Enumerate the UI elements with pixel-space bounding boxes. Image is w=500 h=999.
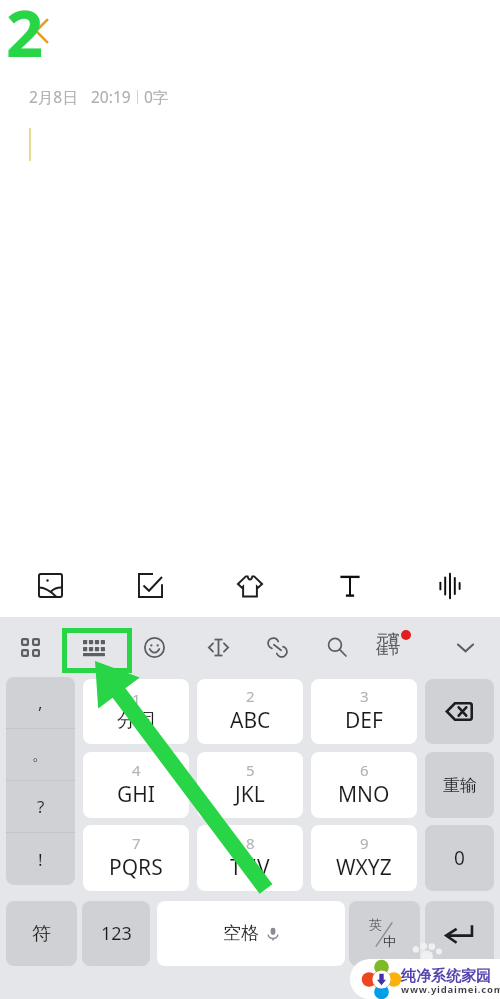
staticText: ?: [37, 795, 45, 818]
button[interactable]: Voice input: [400, 556, 500, 617]
button[interactable]: 空格: [157, 901, 345, 966]
staticText: 英: [369, 916, 382, 932]
button[interactable]: Apps: [10, 626, 50, 668]
button[interactable]: Back: [24, 12, 64, 52]
button[interactable]: 3: [311, 679, 417, 744]
staticText: 3: [360, 686, 369, 706]
staticText: 分词: [117, 709, 155, 733]
staticText: 5: [246, 760, 255, 780]
button[interactable]: Insert image: [0, 556, 100, 617]
staticText: 重输: [443, 775, 477, 796]
button[interactable]: 。: [6, 729, 75, 780]
staticText: 纯净系统家园: [401, 967, 491, 986]
button[interactable]: 重输: [425, 752, 494, 818]
staticText: ABC: [230, 706, 271, 735]
staticText: 0: [454, 845, 465, 871]
button[interactable]: 0: [425, 825, 494, 891]
button[interactable]: 5: [197, 752, 303, 818]
button[interactable]: Emoji: [136, 626, 173, 668]
staticText: ,: [38, 691, 43, 714]
button[interactable]: 9: [311, 825, 417, 891]
staticText: 4: [132, 760, 141, 780]
other: Backspace: [446, 702, 473, 721]
staticText: DEF: [345, 706, 383, 735]
staticText: 元宵: [376, 631, 400, 646]
staticText: 6: [360, 760, 369, 780]
button[interactable]: Collapse keyboard: [447, 626, 484, 668]
button[interactable]: ,: [6, 677, 75, 728]
staticText: MNO: [338, 780, 390, 809]
button[interactable]: Text format: [300, 556, 400, 617]
staticText: 8: [246, 833, 255, 853]
staticText: 20:19: [91, 86, 131, 107]
staticText: TUV: [230, 853, 270, 882]
staticText: JKL: [235, 780, 265, 809]
button[interactable]: 123: [82, 901, 150, 966]
staticText: 2月8日: [29, 86, 78, 107]
button[interactable]: ?: [6, 781, 75, 832]
staticText: 。: [32, 744, 49, 765]
staticText: 符: [32, 922, 51, 946]
staticText: WXYZ: [336, 853, 392, 882]
button[interactable]: 8: [197, 825, 303, 891]
button[interactable]: Move cursor: [200, 626, 237, 668]
staticText: 123: [101, 921, 132, 946]
staticText: 中: [383, 933, 396, 949]
button[interactable]: !: [6, 833, 75, 885]
staticText: 2: [246, 686, 255, 706]
staticText: 7: [132, 833, 141, 853]
staticText: PQRS: [109, 853, 163, 882]
button[interactable]: 1: [83, 679, 189, 744]
button[interactable]: 符: [6, 901, 77, 966]
button[interactable]: Clipboard: [259, 626, 296, 668]
staticText: 2: [6, 0, 44, 77]
button[interactable]: Style: [200, 556, 300, 617]
button[interactable]: 7: [83, 825, 189, 891]
staticText: !: [38, 848, 43, 871]
other: Enter: [445, 924, 474, 944]
button[interactable]: Checklist: [100, 556, 200, 617]
staticText: 空格: [223, 922, 259, 945]
button[interactable]: 6: [311, 752, 417, 818]
button[interactable]: 2: [197, 679, 303, 744]
button[interactable]: Enter: [425, 901, 494, 966]
button[interactable]: Backspace: [425, 679, 494, 744]
staticText: 0字: [144, 86, 169, 107]
staticText: www.yidaimei.com: [401, 983, 500, 996]
button[interactable]: 英: [349, 901, 420, 966]
button[interactable]: Search: [318, 626, 355, 668]
staticText: 9: [360, 833, 369, 853]
button[interactable]: Lantern Festival: [366, 626, 410, 668]
button[interactable]: 4: [83, 752, 189, 818]
staticText: GHI: [117, 780, 155, 809]
staticText: 1: [132, 689, 141, 709]
staticText: 佳节: [376, 642, 400, 657]
button[interactable]: Keyboard layout: [62, 626, 132, 668]
